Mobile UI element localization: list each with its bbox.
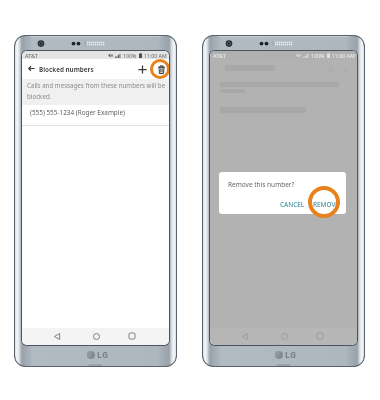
staticText: CANCEL (280, 200, 305, 209)
staticText: Remove this number? (228, 180, 295, 189)
button[interactable]: Recent apps (313, 329, 327, 343)
button[interactable]: (555) 555-1234 (Roger Example) (22, 105, 169, 125)
staticText: REMOVE (313, 200, 339, 209)
staticText: 100% (123, 52, 137, 59)
staticText: (555) 555-1234 (Roger Example) (30, 108, 125, 117)
button[interactable]: Home (277, 329, 291, 343)
staticText: 11:00 AM (332, 52, 355, 59)
button[interactable]: Recent apps (125, 329, 139, 343)
staticText: LG (97, 349, 109, 361)
staticText: LG (285, 349, 297, 361)
button[interactable]: Home (89, 329, 103, 343)
button[interactable]: Back (238, 329, 252, 343)
staticText: Blocked numbers (39, 65, 94, 74)
button[interactable]: REMOVE (310, 197, 342, 212)
button[interactable]: Delete (154, 62, 168, 76)
button[interactable]: Add number (135, 62, 149, 76)
staticText: 100% (311, 52, 325, 59)
staticText: 11:00 AM (144, 52, 167, 59)
staticText: blocked. (27, 92, 52, 100)
staticText: AT&T (25, 52, 38, 59)
staticText: AT&T (213, 52, 226, 59)
button[interactable]: Navigate up (25, 62, 38, 75)
button[interactable]: CANCEL (277, 197, 308, 212)
button[interactable]: Back (50, 329, 64, 343)
staticText: Calls and messages from these numbers wi… (27, 81, 166, 89)
